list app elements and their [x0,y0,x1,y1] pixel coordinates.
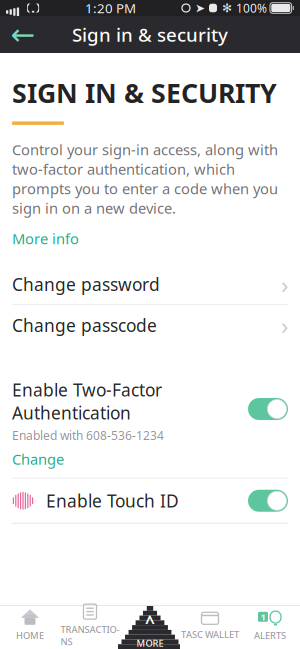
button[interactable]: 1 [240,606,300,649]
button[interactable]: ^ [120,606,180,649]
button[interactable]: HOME [0,606,60,649]
staticText: ^ [145,611,155,634]
staticText: HOME [16,629,44,642]
staticText: ✻ [222,1,232,15]
staticText: 1 [260,611,265,623]
staticText: TRANSACTIONS [60,623,119,648]
button[interactable]: TRANSACTIONS [60,606,120,649]
button[interactable]: Back [0,16,46,53]
staticText: 1:20 PM [85,0,136,17]
staticText: Change passcode [12,314,157,337]
staticText: Sign in & security [72,22,228,47]
staticText: SIGN IN & SECURITY [12,75,277,110]
staticText: 100% [236,0,267,16]
staticText: Control your sign-in access, along with … [12,140,278,218]
button[interactable]: Enable Touch ID [248,490,288,512]
button[interactable]: Change passcode [0,305,300,345]
staticText: ➤ [195,1,205,15]
staticText: ALERTS [254,629,286,642]
staticText: Change [12,449,64,469]
button[interactable]: Change [12,448,64,470]
button[interactable]: TASC WALLET [180,606,240,649]
staticText: MORE [136,637,163,649]
staticText: Enable Two-Factor Authentication [12,378,162,424]
staticText: › [281,309,288,341]
staticText: Enable Touch ID [46,489,179,512]
staticText: ← [10,18,35,51]
staticText: Change password [12,273,160,296]
staticText: More info [12,229,79,248]
button[interactable]: Enable Two-Factor Authentication [248,398,288,420]
button[interactable]: More info [12,227,79,250]
staticText: Enabled with 608-536-1234 [12,427,164,443]
staticText: TASC WALLET [181,628,239,641]
button[interactable]: Change password [0,264,300,304]
staticText: › [281,268,288,300]
